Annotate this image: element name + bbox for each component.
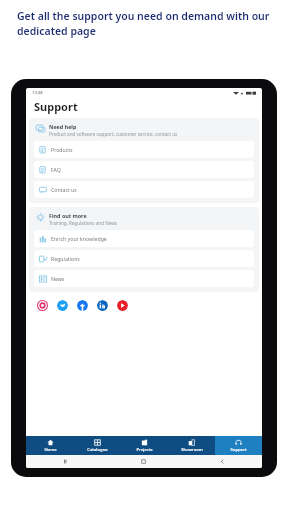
staticText: News	[51, 275, 65, 282]
button[interactable]: YouTube	[117, 300, 128, 311]
staticText: Contact us	[51, 186, 77, 193]
button[interactable]: Facebook	[77, 300, 88, 311]
button[interactable]: News	[34, 270, 254, 287]
staticText: Catalogue	[87, 447, 108, 453]
staticText: 13:28	[32, 90, 43, 96]
staticText: Regulations	[51, 255, 80, 262]
staticText: Get all the support you need on demand w…	[17, 9, 272, 38]
staticText: Product and software support, customer s…	[49, 131, 178, 137]
staticText: Need help	[49, 123, 77, 130]
button[interactable]: Enrich your knowledge	[34, 230, 254, 247]
button[interactable]: Back	[183, 455, 262, 468]
button[interactable]: Home	[104, 455, 183, 468]
staticText: Products	[51, 146, 73, 153]
staticText: Support	[34, 99, 78, 114]
button[interactable]: Projects	[121, 436, 168, 455]
staticText: Home	[44, 447, 57, 453]
button[interactable]: Home	[26, 436, 74, 455]
button[interactable]: Products	[34, 141, 254, 158]
button[interactable]: Instagram	[37, 300, 48, 311]
button[interactable]: Showroom	[168, 436, 215, 455]
staticText: Projects	[136, 447, 153, 453]
button[interactable]: FAQ	[34, 161, 254, 178]
staticText: FAQ	[51, 166, 61, 173]
staticText: Support	[230, 447, 247, 453]
button[interactable]: Support	[215, 436, 262, 455]
button[interactable]: LinkedIn	[97, 300, 108, 311]
button[interactable]: Regulations	[34, 250, 254, 267]
staticText: Showroom	[181, 447, 203, 453]
staticText: Training, Regulations and News	[49, 220, 117, 226]
button[interactable]: Twitter	[57, 300, 68, 311]
button[interactable]: Catalogue	[74, 436, 121, 455]
staticText: Find out more	[49, 212, 87, 219]
button[interactable]: Contact us	[34, 181, 254, 198]
button[interactable]: Recents	[26, 455, 104, 468]
staticText: Enrich your knowledge	[51, 235, 107, 242]
